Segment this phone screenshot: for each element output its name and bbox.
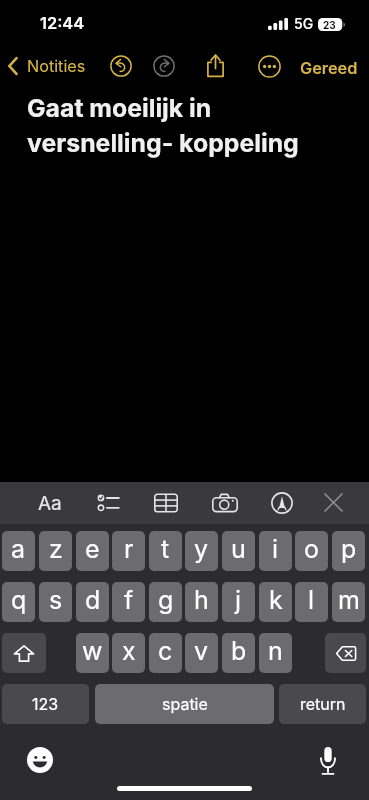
staticText: b <box>231 636 247 666</box>
button[interactable]: Camera <box>212 491 238 515</box>
staticText: p <box>341 534 357 564</box>
button[interactable]: z <box>39 531 72 571</box>
button[interactable]: l <box>295 582 328 622</box>
staticText: c <box>158 636 173 666</box>
button[interactable]: t <box>149 531 182 571</box>
staticText: t <box>161 534 170 564</box>
button[interactable]: Deel <box>206 54 225 77</box>
staticText: r <box>124 534 134 564</box>
button[interactable]: r <box>112 531 145 571</box>
button[interactable]: w <box>76 633 109 673</box>
button[interactable]: Meer <box>258 55 281 78</box>
button[interactable]: b <box>222 633 255 673</box>
button[interactable]: c <box>149 633 182 673</box>
staticText: 12:44 <box>40 13 85 33</box>
button[interactable]: Emoji <box>27 747 53 773</box>
button[interactable]: f <box>112 582 145 622</box>
button[interactable]: e <box>76 531 109 571</box>
button[interactable]: spatie <box>95 684 274 724</box>
button[interactable]: o <box>295 531 328 571</box>
staticText: u <box>231 534 246 564</box>
staticText: 123 <box>32 694 59 713</box>
button[interactable]: j <box>222 582 255 622</box>
button[interactable]: s <box>39 582 72 622</box>
staticText: x <box>122 636 136 666</box>
staticText: Gaat moeilijk in versnelling- koppeling <box>27 93 349 158</box>
button[interactable]: Dicteren <box>320 747 336 775</box>
staticText: l <box>308 585 315 615</box>
staticText: g <box>158 585 174 615</box>
staticText: i <box>272 534 279 564</box>
button[interactable]: 123 <box>2 684 89 724</box>
staticText: z <box>49 534 63 564</box>
staticText: n <box>268 636 283 666</box>
button[interactable]: Sluit <box>325 494 342 511</box>
staticText: return <box>300 694 346 713</box>
staticText: o <box>304 534 319 564</box>
button[interactable]: q <box>2 582 35 622</box>
staticText: Aa <box>38 492 62 515</box>
button[interactable]: Tabel <box>154 491 178 515</box>
button[interactable]: Checklist <box>97 492 119 514</box>
button[interactable]: Gereed <box>300 58 358 78</box>
staticText: e <box>85 534 100 564</box>
staticText: 5G <box>294 15 314 32</box>
staticText: spatie <box>162 694 208 713</box>
staticText: k <box>269 585 283 615</box>
button[interactable]: Aa <box>32 491 68 515</box>
staticText: h <box>194 585 209 615</box>
staticText: 23 <box>323 19 336 31</box>
staticText: d <box>85 585 101 615</box>
staticText: s <box>49 585 63 615</box>
staticText: f <box>124 585 134 615</box>
staticText: j <box>235 585 242 615</box>
button[interactable]: h <box>185 582 218 622</box>
button[interactable]: Opnieuw <box>153 55 175 77</box>
button[interactable]: v <box>185 633 218 673</box>
button[interactable]: d <box>76 582 109 622</box>
staticText: q <box>11 585 27 615</box>
button[interactable]: m <box>332 582 365 622</box>
button[interactable]: u <box>222 531 255 571</box>
button[interactable]: k <box>259 582 292 622</box>
button[interactable]: x <box>112 633 145 673</box>
button[interactable]: p <box>332 531 365 571</box>
button[interactable]: return <box>279 684 366 724</box>
button[interactable]: Notities <box>8 56 86 76</box>
button[interactable]: n <box>259 633 292 673</box>
staticText: v <box>194 636 209 666</box>
button[interactable]: y <box>185 531 218 571</box>
staticText: a <box>11 534 26 564</box>
button[interactable]: i <box>259 531 292 571</box>
button[interactable]: Ongedaan maken <box>110 55 132 77</box>
staticText: Notities <box>27 56 86 76</box>
staticText: m <box>338 585 360 615</box>
button[interactable]: g <box>149 582 182 622</box>
button[interactable]: Markering <box>271 492 293 514</box>
staticText: y <box>194 534 209 564</box>
button[interactable]: a <box>2 531 35 571</box>
button[interactable]: Shift <box>2 633 46 673</box>
button[interactable]: Wis <box>325 633 366 673</box>
staticText: w <box>82 636 103 666</box>
